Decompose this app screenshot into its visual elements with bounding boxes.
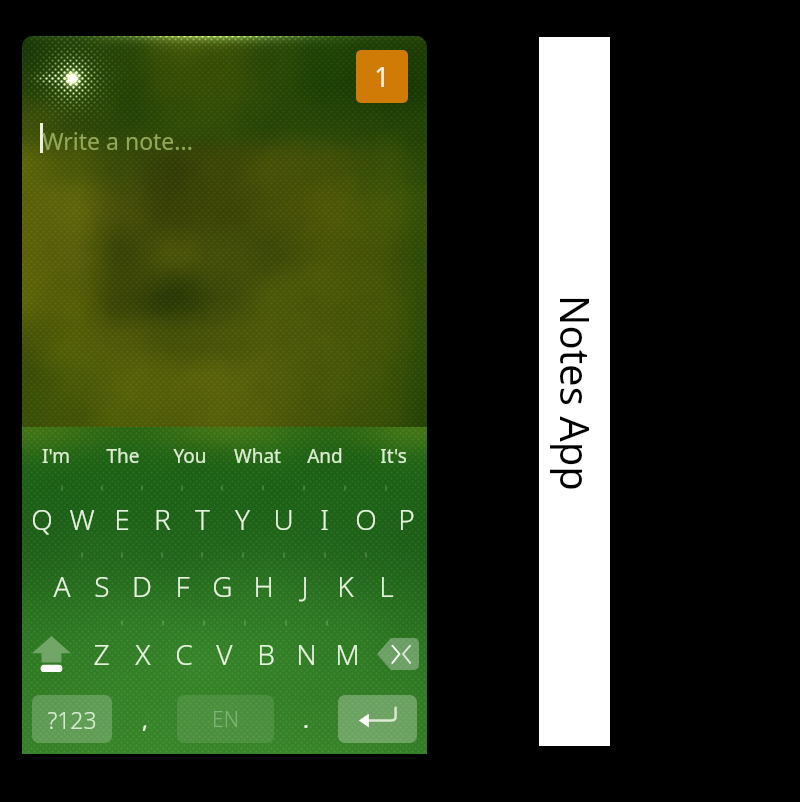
staticText: F [175,567,190,605]
button[interactable]: Enter [338,695,417,743]
button[interactable]: It's [359,427,427,485]
staticText: Write a note... [42,125,193,156]
staticText: Q [31,500,53,538]
button[interactable]: H [243,552,284,620]
button[interactable]: R [142,485,182,552]
staticText: N [296,635,317,673]
staticText: 1 [374,58,390,95]
button[interactable]: U [263,485,304,552]
button[interactable]: What [223,427,291,485]
button[interactable]: Backspace [368,620,427,687]
staticText: . [303,704,309,734]
button[interactable]: J [284,552,325,620]
staticText: K [337,567,354,605]
button[interactable]: The [89,427,156,485]
staticText: Notes App [549,295,603,491]
button[interactable]: . [274,695,338,743]
button[interactable]: V [204,620,245,687]
staticText: S [94,567,110,605]
staticText: , [142,704,148,734]
button[interactable]: C [163,620,204,687]
staticText: You [173,443,207,469]
button[interactable]: G [202,552,243,620]
button[interactable]: I'm [22,427,89,485]
staticText: EN [212,705,239,734]
staticText: R [154,500,171,538]
button[interactable]: , [112,695,177,743]
button[interactable]: Q [22,485,62,552]
button[interactable]: T [182,485,222,552]
button[interactable]: A [42,552,82,620]
staticText: D [132,567,152,605]
staticText: U [273,500,294,538]
button[interactable]: I [304,485,345,552]
staticText: O [355,500,377,538]
staticText: A [53,567,71,605]
staticText: H [253,567,274,605]
staticText: J [301,567,309,605]
staticText: It's [380,443,407,469]
button[interactable]: P [386,485,427,552]
staticText: L [379,567,394,605]
staticText: Y [235,500,250,538]
staticText: X [135,635,151,673]
button[interactable]: M [327,620,368,687]
staticText: B [257,635,275,673]
button[interactable]: B [245,620,286,687]
staticText: And [307,443,343,469]
button[interactable]: Shift [22,620,81,687]
button[interactable]: D [122,552,162,620]
staticText: M [335,635,360,673]
staticText: I'm [42,443,70,469]
staticText: C [175,635,193,673]
staticText: ?123 [47,704,97,735]
button[interactable]: K [325,552,366,620]
button[interactable]: Z [81,620,122,687]
button[interactable]: F [162,552,202,620]
staticText: T [195,500,210,538]
staticText: Z [93,635,110,673]
button[interactable]: ?123 [32,695,112,743]
button[interactable]: Y [222,485,263,552]
button[interactable]: E [102,485,142,552]
staticText: P [398,500,415,538]
button[interactable]: 1 [356,50,408,103]
staticText: G [212,567,233,605]
button[interactable]: W [62,485,102,552]
staticText: E [114,500,130,538]
button[interactable]: EN [177,695,274,743]
button[interactable]: You [156,427,223,485]
button[interactable]: L [366,552,407,620]
button[interactable]: N [286,620,327,687]
button[interactable]: O [345,485,386,552]
staticText: What [234,443,281,469]
button[interactable]: And [291,427,359,485]
staticText: The [106,443,140,469]
staticText: W [69,500,95,538]
button[interactable]: S [82,552,122,620]
staticText: V [216,635,233,673]
staticText: I [320,500,329,538]
button[interactable]: X [122,620,163,687]
